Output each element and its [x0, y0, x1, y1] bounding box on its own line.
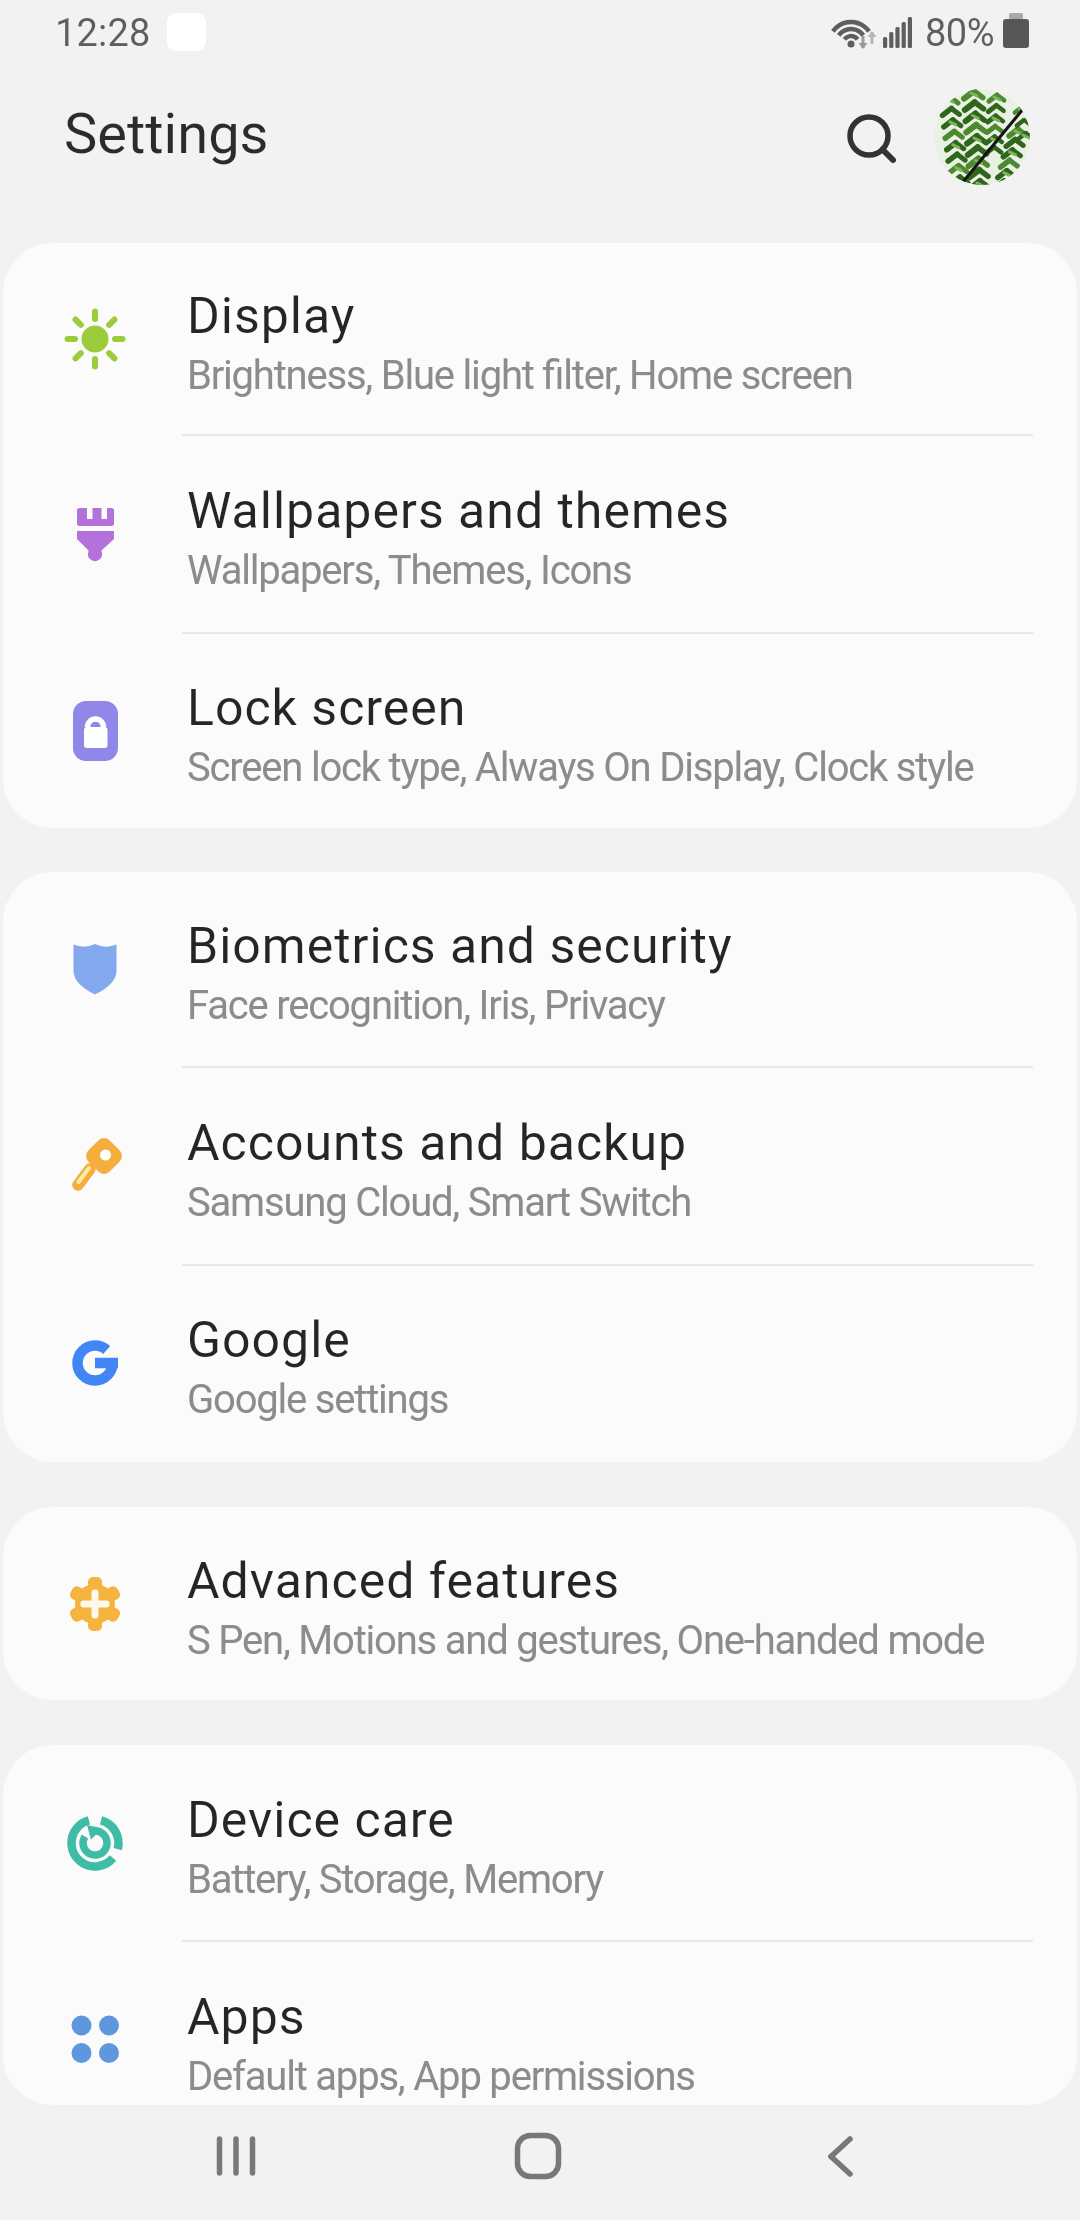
- button[interactable]: Biometrics and security: [3, 872, 1077, 1066]
- button[interactable]: [212, 2132, 260, 2180]
- staticText: Display: [187, 287, 356, 346]
- staticText: Default apps, App permissions: [187, 2053, 695, 2100]
- staticText: 80%: [925, 11, 995, 56]
- button[interactable]: Display: [3, 243, 1077, 434]
- staticText: Google: [187, 1311, 351, 1370]
- button[interactable]: Accounts and backup: [3, 1068, 1077, 1264]
- button[interactable]: [514, 2132, 562, 2180]
- staticText: Biometrics and security: [187, 917, 733, 976]
- button[interactable]: Apps: [3, 1942, 1077, 2105]
- staticText: Wallpapers, Themes, Icons: [187, 547, 632, 594]
- staticText: S Pen, Motions and gestures, One-handed …: [187, 1617, 985, 1664]
- staticText: Device care: [187, 1791, 455, 1850]
- staticText: Lock screen: [187, 679, 467, 738]
- staticText: 12:28: [55, 11, 151, 56]
- button[interactable]: Device care: [3, 1745, 1077, 1940]
- staticText: Screen lock type, Always On Display, Clo…: [187, 744, 974, 791]
- button[interactable]: Lock screen: [3, 634, 1077, 828]
- button[interactable]: [934, 89, 1030, 185]
- staticText: Samsung Cloud, Smart Switch: [187, 1179, 692, 1226]
- button[interactable]: [817, 2132, 865, 2180]
- staticText: Accounts and backup: [187, 1114, 688, 1173]
- staticText: Face recognition, Iris, Privacy: [187, 982, 665, 1029]
- button[interactable]: Wallpapers and themes: [3, 436, 1077, 632]
- button[interactable]: [836, 103, 902, 169]
- staticText: Advanced features: [187, 1552, 620, 1611]
- staticText: Apps: [187, 1988, 306, 2047]
- staticText: Google settings: [187, 1376, 449, 1423]
- staticText: Brightness, Blue light filter, Home scre…: [187, 352, 853, 399]
- staticText: Wallpapers and themes: [187, 482, 731, 541]
- button[interactable]: Advanced features: [3, 1507, 1077, 1700]
- button[interactable]: Google: [3, 1266, 1077, 1460]
- staticText: Battery, Storage, Memory: [187, 1856, 603, 1903]
- staticText: Settings: [64, 101, 269, 167]
